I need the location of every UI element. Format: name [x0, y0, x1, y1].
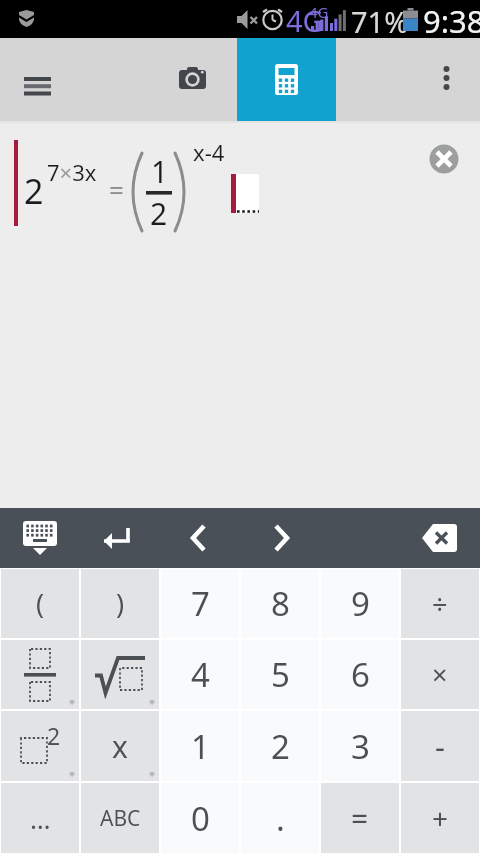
button[interactable]: . — [241, 783, 319, 853]
button[interactable]: 2 — [241, 711, 319, 781]
staticText: 1 — [151, 151, 169, 192]
staticText: 8 — [271, 581, 290, 626]
button[interactable]: 3 — [321, 711, 399, 781]
staticText: ÷ — [432, 585, 448, 622]
staticText: 4G — [286, 1, 324, 39]
button[interactable] — [172, 512, 228, 564]
button[interactable] — [1, 640, 79, 709]
staticText: 2 — [271, 724, 290, 769]
button[interactable] — [252, 512, 308, 564]
staticText: 2 — [47, 720, 61, 751]
staticText: ABC — [100, 804, 141, 833]
staticText: 4 — [191, 652, 210, 697]
button[interactable] — [10, 63, 66, 111]
staticText: 0 — [191, 796, 210, 841]
button[interactable]: - — [401, 711, 479, 781]
staticText: 5 — [271, 652, 290, 697]
button[interactable]: 2 — [1, 711, 79, 781]
button[interactable]: 0 — [161, 783, 239, 853]
staticText: 71% — [351, 2, 409, 40]
button[interactable]: 6 — [321, 640, 399, 709]
staticText: 7 — [191, 581, 210, 626]
button[interactable]: × — [401, 640, 479, 709]
staticText: … — [30, 801, 51, 836]
staticText: = — [351, 798, 369, 839]
button[interactable]: … — [1, 783, 79, 853]
staticText: . — [276, 796, 285, 841]
button[interactable]: ÷ — [401, 569, 479, 638]
button[interactable]: 9 — [321, 569, 399, 638]
staticText: + — [432, 799, 449, 837]
staticText: ) — [116, 585, 125, 622]
button[interactable] — [12, 512, 68, 564]
button[interactable]: 7 — [161, 569, 239, 638]
button[interactable] — [156, 55, 228, 105]
staticText: 6 — [351, 652, 370, 697]
button[interactable] — [420, 55, 472, 105]
button[interactable]: 4 — [161, 640, 239, 709]
button[interactable] — [424, 139, 464, 179]
staticText: 3 — [351, 724, 370, 769]
staticText: x-4 — [193, 137, 225, 167]
button[interactable]: ) — [81, 569, 159, 638]
staticText: 7×3x — [47, 157, 97, 187]
staticText: = — [109, 172, 124, 207]
staticText: 2 — [24, 168, 44, 214]
button[interactable] — [237, 38, 336, 121]
button[interactable] — [81, 640, 159, 709]
staticText: 4G — [309, 2, 329, 22]
staticText: 9:38 — [423, 0, 480, 38]
button[interactable]: + — [401, 783, 479, 853]
button[interactable]: x — [81, 711, 159, 781]
button[interactable]: 8 — [241, 569, 319, 638]
staticText: × — [432, 656, 448, 693]
button[interactable]: ABC — [81, 783, 159, 853]
button[interactable]: 1 — [161, 711, 239, 781]
staticText: 1 — [191, 724, 210, 769]
staticText: x — [112, 726, 128, 767]
staticText: - — [435, 725, 445, 767]
button[interactable]: = — [321, 783, 399, 853]
button[interactable] — [410, 512, 470, 564]
staticText: ( — [36, 585, 45, 622]
staticText: 9 — [351, 581, 370, 626]
button[interactable]: 5 — [241, 640, 319, 709]
button[interactable] — [90, 512, 146, 564]
staticText: 2 — [150, 193, 168, 234]
button[interactable]: ( — [1, 569, 79, 638]
